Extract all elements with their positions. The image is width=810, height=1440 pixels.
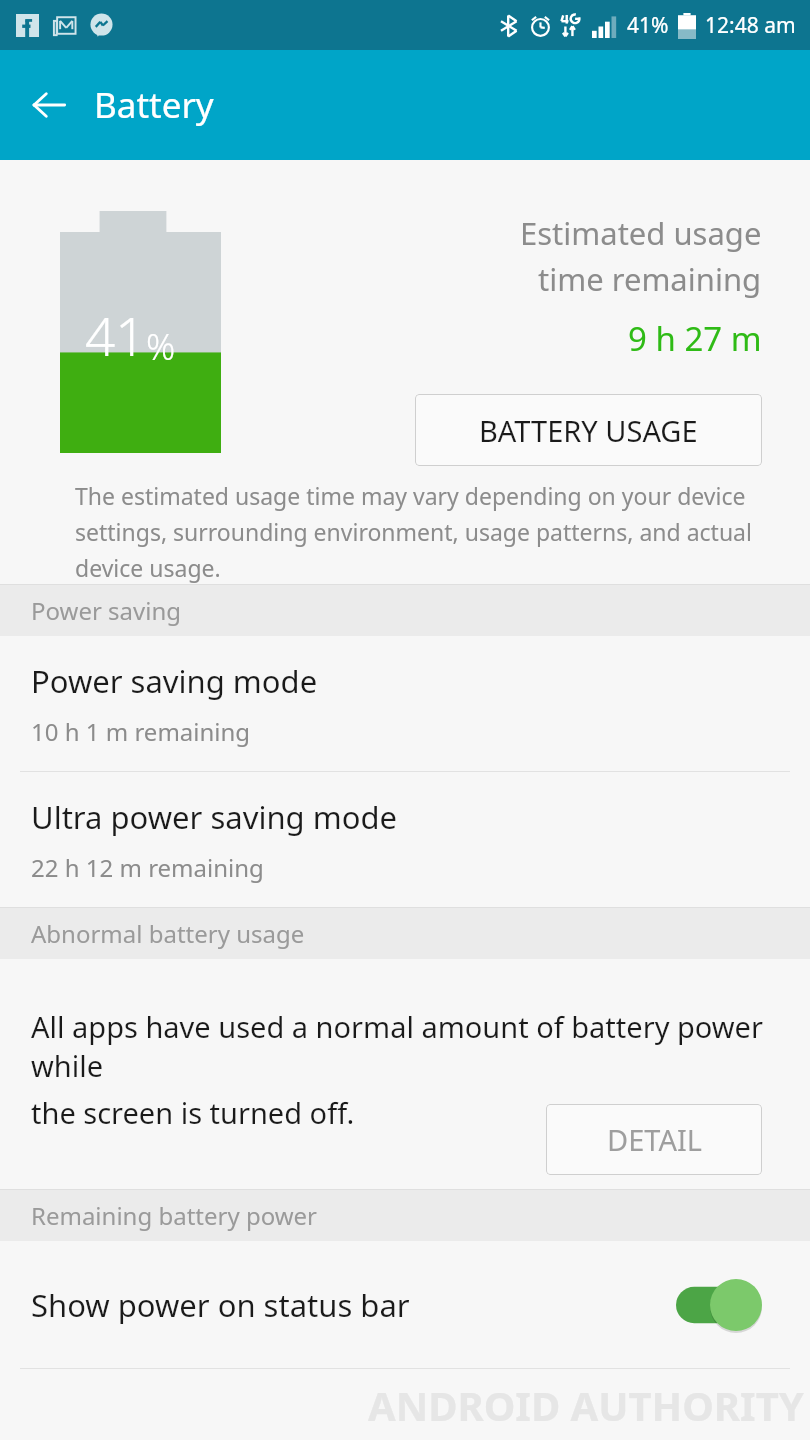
button[interactable]: Back — [18, 74, 80, 136]
button[interactable]: Show power on status bar — [0, 1241, 810, 1368]
staticText: 22 h 12 m remaining — [31, 851, 264, 884]
staticText: settings, surrounding environment, usage… — [75, 516, 752, 547]
staticText: the screen is turned off. — [31, 1093, 355, 1132]
staticText: Ultra power saving mode — [31, 796, 397, 838]
staticText: Estimated usage — [520, 212, 762, 254]
staticText: 41 — [85, 299, 146, 371]
button[interactable]: Power saving mode — [0, 636, 810, 771]
staticText: Power saving — [31, 594, 182, 627]
staticText: The estimated usage time may vary depend… — [75, 480, 746, 511]
staticText: Show power on status bar — [31, 1284, 410, 1326]
button[interactable]: DETAIL — [546, 1104, 762, 1175]
button[interactable]: Ultra power saving mode — [0, 772, 810, 907]
staticText: 12:48 am — [705, 11, 796, 40]
staticText: DETAIL — [607, 1120, 702, 1159]
staticText: 9 h 27 m — [628, 316, 762, 361]
staticText: % — [146, 322, 176, 371]
staticText: BATTERY USAGE — [479, 411, 698, 450]
staticText: time remaining — [538, 258, 762, 300]
staticText: All apps have used a normal amount of ba… — [31, 1007, 810, 1085]
staticText: 10 h 1 m remaining — [31, 715, 251, 748]
staticText: Remaining battery power — [31, 1199, 318, 1232]
staticText: device usage. — [75, 552, 221, 583]
staticText: Power saving mode — [31, 660, 318, 702]
staticText: ANDROID AUTHORITY — [368, 1378, 804, 1432]
staticText: Battery — [94, 81, 214, 129]
button[interactable]: BATTERY USAGE — [415, 394, 762, 466]
staticText: Abnormal battery usage — [31, 917, 305, 950]
staticText: 41% — [627, 11, 669, 40]
